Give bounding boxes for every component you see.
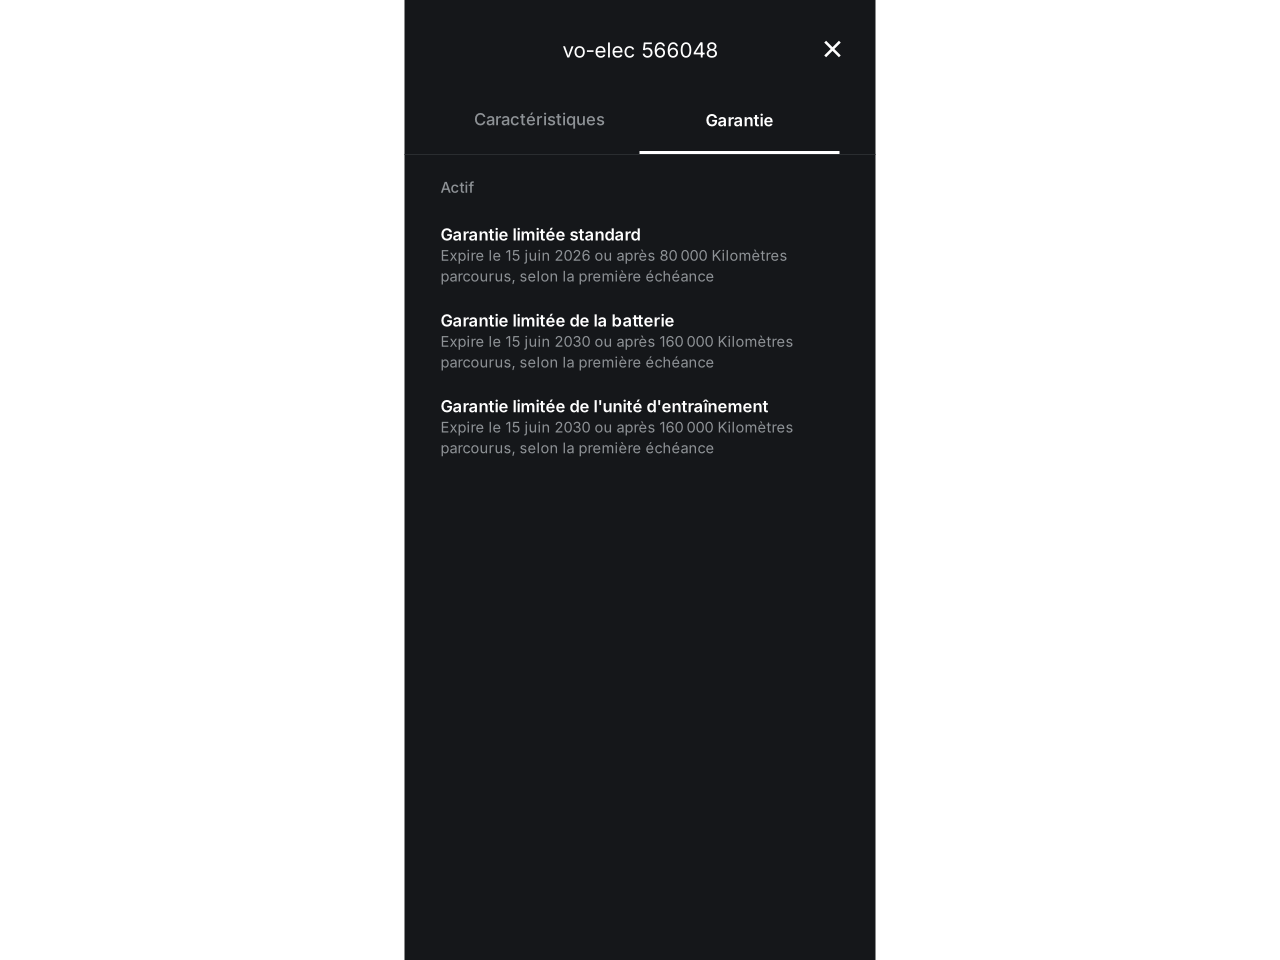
staticText: Garantie limitée standard bbox=[440, 224, 640, 245]
staticText: vo-elec 566048 bbox=[562, 37, 718, 62]
button[interactable]: Garantie limitée de l'unité d'entraîneme… bbox=[440, 396, 798, 457]
staticText: Garantie bbox=[705, 110, 773, 130]
staticText: Actif bbox=[440, 178, 474, 196]
staticText: Caractéristiques bbox=[474, 109, 605, 129]
staticText: Expire le 15 juin 2026 ou après 80 000 K… bbox=[440, 247, 787, 285]
staticText: Garantie limitée de l'unité d'entraîneme… bbox=[440, 396, 768, 416]
button[interactable]: Caractéristiques bbox=[439, 109, 639, 155]
button[interactable]: Garantie limitée de la batterie bbox=[440, 310, 798, 371]
staticText: Expire le 15 juin 2030 ou après 160 000 … bbox=[440, 332, 793, 371]
staticText: Garantie limitée de la batterie bbox=[440, 310, 674, 330]
button[interactable]: Fermer bbox=[810, 27, 854, 71]
staticText: Expire le 15 juin 2030 ou après 160 000 … bbox=[440, 418, 793, 457]
button[interactable]: Garantie limitée standard bbox=[440, 224, 798, 285]
button[interactable]: Garantie bbox=[639, 110, 839, 154]
